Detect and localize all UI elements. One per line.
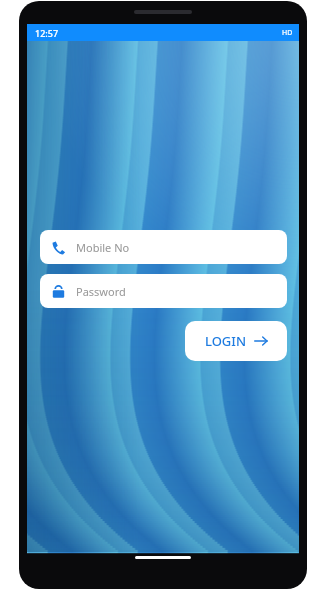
button[interactable]: LOGIN <box>185 321 287 361</box>
staticText: Mobile No <box>76 240 130 255</box>
staticText: HD <box>282 28 293 38</box>
staticText: LOGIN <box>205 332 247 350</box>
staticText: Password <box>76 284 126 299</box>
button[interactable]: Mobile No <box>40 230 287 264</box>
staticText: 12:57 <box>35 27 59 39</box>
button[interactable]: Password <box>40 274 287 308</box>
